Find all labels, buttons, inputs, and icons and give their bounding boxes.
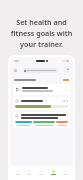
- button[interactable]: [13, 112, 70, 128]
- button[interactable]: [13, 97, 70, 110]
- button[interactable]: See all: [63, 79, 69, 81]
- button[interactable]: Trainer: [47, 166, 59, 178]
- other: Open goal: [65, 88, 68, 91]
- staticText: fitness goals with: [8, 28, 75, 38]
- button[interactable]: Profile: [64, 68, 69, 73]
- button[interactable]: Plan: [35, 166, 47, 178]
- staticText: your trainer.: [8, 39, 75, 49]
- button[interactable]: Open goal: [13, 84, 70, 95]
- staticText: Set health and: [8, 17, 75, 27]
- button[interactable]: [23, 68, 57, 73]
- button[interactable]: Profile: [59, 166, 71, 178]
- button[interactable]: Home: [12, 166, 23, 178]
- button[interactable]: Workouts: [23, 166, 35, 178]
